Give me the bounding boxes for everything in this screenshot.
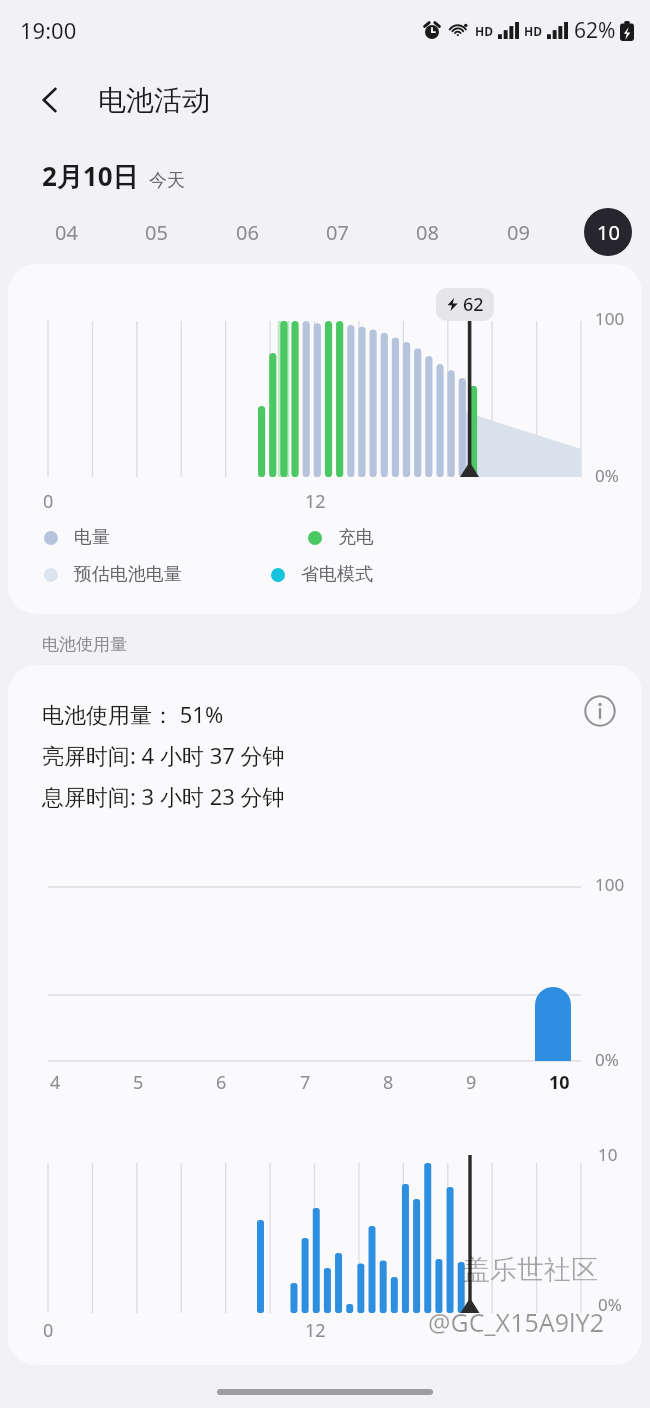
button[interactable]: 05 <box>132 208 180 256</box>
staticText: 07 <box>326 219 349 246</box>
staticText: 电池使用量 <box>42 634 127 655</box>
staticText: 息屏时间: 3 小时 23 分钟 <box>42 781 285 811</box>
button[interactable]: 充电 <box>308 526 374 549</box>
staticText: 亮屏时间: 4 小时 37 分钟 <box>42 740 285 770</box>
button[interactable]: 09 <box>494 208 542 256</box>
staticText: 05 <box>145 219 168 246</box>
staticText: @GC_X15A9lY2 <box>428 1305 605 1339</box>
staticText: 0 <box>43 1318 54 1343</box>
button[interactable]: 04 <box>42 208 90 256</box>
staticText: 预估电池电量 <box>74 563 182 586</box>
button[interactable]: 08 <box>403 208 451 256</box>
button[interactable]: Back <box>26 76 74 124</box>
button[interactable]: Info <box>578 689 622 733</box>
staticText: 0% <box>595 1048 619 1071</box>
staticText: 12 <box>305 489 326 514</box>
button[interactable]: 06 <box>223 208 271 256</box>
staticText: HD <box>475 23 493 39</box>
staticText: 10 <box>549 1070 570 1095</box>
staticText: 8 <box>383 1070 394 1095</box>
staticText: 电池活动 <box>98 83 210 118</box>
staticText: 08 <box>416 219 439 246</box>
staticText: 06 <box>236 219 259 246</box>
staticText: 0% <box>595 464 619 487</box>
staticText: 省电模式 <box>301 563 373 586</box>
button[interactable]: 100 <box>8 264 642 614</box>
button[interactable]: 电量 <box>44 526 110 549</box>
button[interactable]: 10 <box>584 208 632 256</box>
staticText: 6 <box>216 1070 227 1095</box>
staticText: 62 <box>463 292 484 317</box>
button[interactable]: 07 <box>313 208 361 256</box>
button[interactable]: 预估电池电量 <box>44 563 182 586</box>
staticText: 09 <box>507 219 530 246</box>
button[interactable]: 省电模式 <box>271 563 373 586</box>
staticText: 7 <box>300 1070 311 1095</box>
staticText: HD <box>524 23 542 39</box>
staticText: 100 <box>595 307 625 330</box>
staticText: 19:00 <box>20 15 77 45</box>
staticText: 10 <box>598 1143 618 1166</box>
staticText: 0 <box>43 489 54 514</box>
staticText: 4 <box>50 1070 61 1095</box>
staticText: 电池使用量： 51% <box>42 699 224 729</box>
staticText: 9 <box>466 1070 477 1095</box>
staticText: 10 <box>597 219 620 246</box>
staticText: 100 <box>595 873 625 896</box>
staticText: 电量 <box>74 526 110 549</box>
staticText: 今天 <box>149 169 185 192</box>
staticText: 62% <box>574 16 616 45</box>
staticText: 04 <box>55 219 78 246</box>
staticText: 12 <box>305 1318 326 1343</box>
staticText: 盖乐世社区 <box>463 1253 598 1287</box>
staticText: 5 <box>133 1070 144 1095</box>
staticText: 充电 <box>338 526 374 549</box>
staticText: 0% <box>598 1293 622 1316</box>
staticText: 2月10日 <box>42 158 139 194</box>
